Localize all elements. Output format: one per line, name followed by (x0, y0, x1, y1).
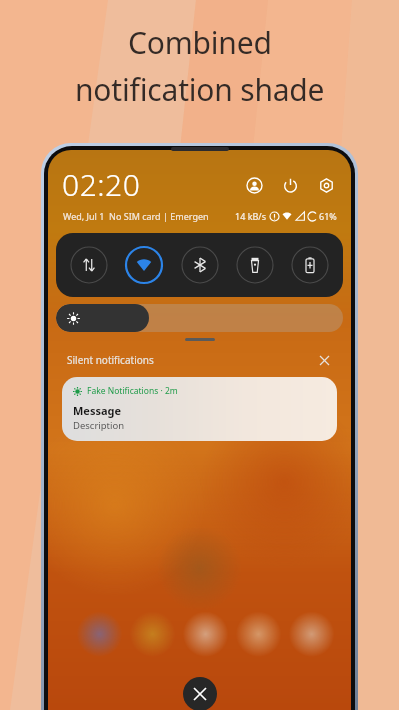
button[interactable]: User profile (243, 174, 265, 196)
staticText: 61% (319, 210, 337, 222)
staticText: Message (73, 403, 122, 418)
staticText: Silent notifications (67, 353, 154, 367)
staticText: 02:20 (62, 164, 141, 205)
button[interactable]: Battery saver (288, 243, 332, 287)
staticText: Combined (128, 22, 272, 63)
button[interactable]: Clear silent notifications (316, 352, 332, 368)
button[interactable]: Mobile data (67, 243, 111, 287)
button[interactable]: Power (279, 174, 301, 196)
staticText: Fake Notifications · 2m (87, 385, 178, 397)
button[interactable]: Fake Notifications · 2m (62, 377, 337, 441)
staticText: 14 kB/s (235, 210, 266, 222)
button[interactable]: Silent notifications (67, 352, 332, 368)
button[interactable]: Wi-Fi (122, 243, 166, 287)
staticText: Wed, Jul 1 No SIM card | Emergen (63, 210, 209, 222)
staticText: Description (73, 419, 125, 432)
staticText: notification shade (75, 69, 325, 110)
button[interactable]: Settings (315, 174, 337, 196)
button[interactable]: Close shade (183, 677, 217, 710)
button[interactable]: Flashlight (233, 243, 277, 287)
button[interactable] (56, 304, 343, 332)
button[interactable]: Bluetooth (178, 243, 222, 287)
